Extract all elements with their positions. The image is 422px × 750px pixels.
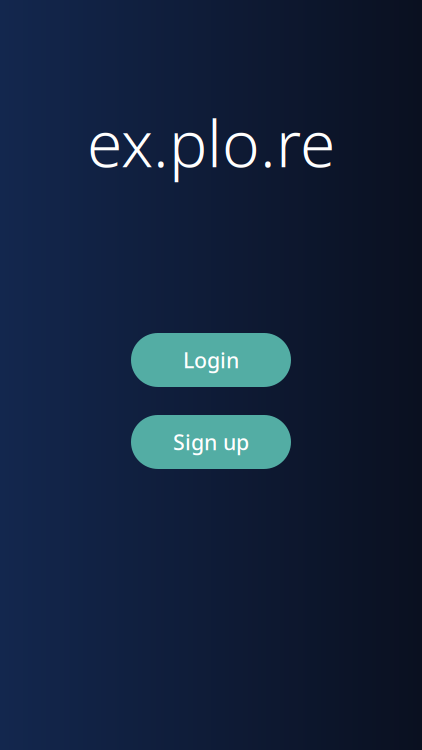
button[interactable]: Login: [131, 333, 291, 387]
staticText: ex.plo.re: [87, 100, 335, 185]
button[interactable]: Sign up: [131, 415, 291, 469]
staticText: Login: [183, 346, 239, 374]
staticText: Sign up: [173, 428, 249, 456]
